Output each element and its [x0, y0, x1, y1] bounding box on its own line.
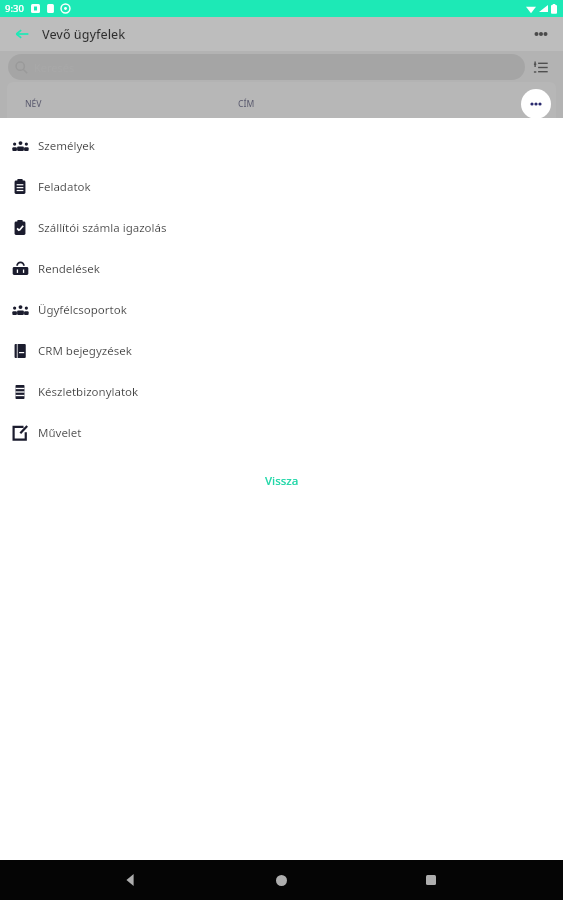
staticText: Vevő ügyfelek [42, 26, 126, 43]
staticText: 9:30 [5, 2, 24, 15]
staticText: CÍM [238, 98, 255, 110]
staticText: NÉV [25, 98, 42, 110]
button[interactable]: Művelet [0, 412, 563, 453]
button[interactable]: Személyek [0, 125, 563, 166]
button[interactable]: Vissza [0, 469, 563, 493]
button[interactable]: Ügyfélcsoportok [0, 289, 563, 330]
staticText: Személyek [38, 138, 95, 154]
button[interactable]: Feladatok [0, 166, 563, 207]
button[interactable]: Recent apps [413, 862, 449, 898]
staticText: Feladatok [38, 179, 91, 195]
staticText: Rendelések [38, 261, 100, 277]
staticText: Ügyfélcsoportok [38, 302, 127, 318]
button[interactable]: Back [113, 862, 149, 898]
button[interactable]: Back [8, 20, 36, 48]
staticText: Készletbizonylatok [38, 384, 139, 400]
button[interactable]: More options [527, 20, 555, 48]
button[interactable]: Készletbizonylatok [0, 371, 563, 412]
button[interactable]: CRM bejegyzések [0, 330, 563, 371]
button[interactable]: Home [263, 862, 299, 898]
staticText: Vissza [265, 473, 299, 489]
staticText: Művelet [38, 425, 82, 441]
staticText: CRM bejegyzések [38, 343, 132, 359]
staticText: Szállítói számla igazolás [38, 220, 167, 236]
button[interactable]: Rendelések [0, 248, 563, 289]
button[interactable]: Row actions [521, 89, 551, 119]
button[interactable]: Szállítói számla igazolás [0, 207, 563, 248]
button[interactable]: Sort [525, 52, 555, 82]
